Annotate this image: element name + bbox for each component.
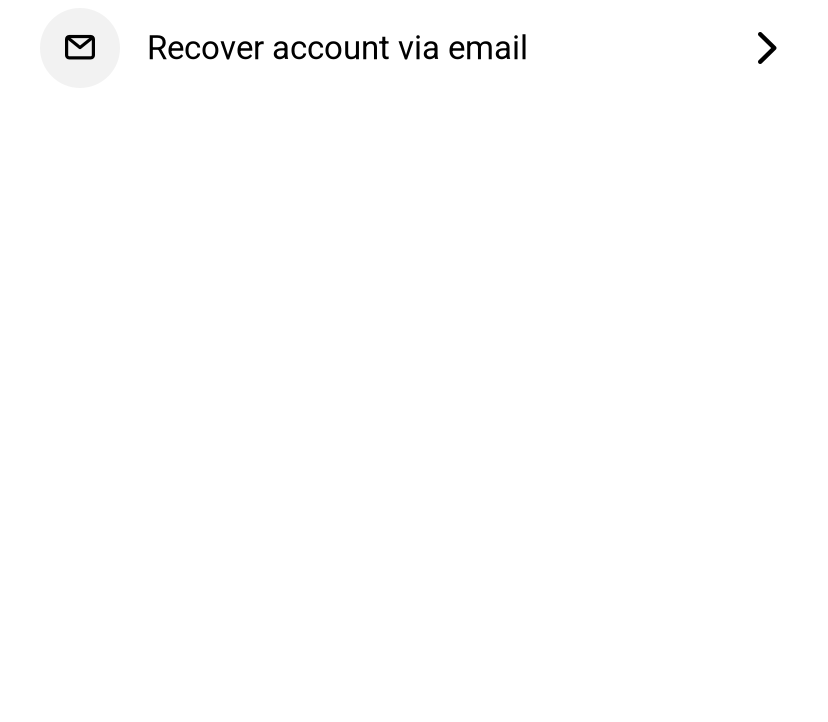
button[interactable]: Recover account via email: [0, 0, 828, 96]
staticText: Recover account via email: [147, 29, 528, 67]
